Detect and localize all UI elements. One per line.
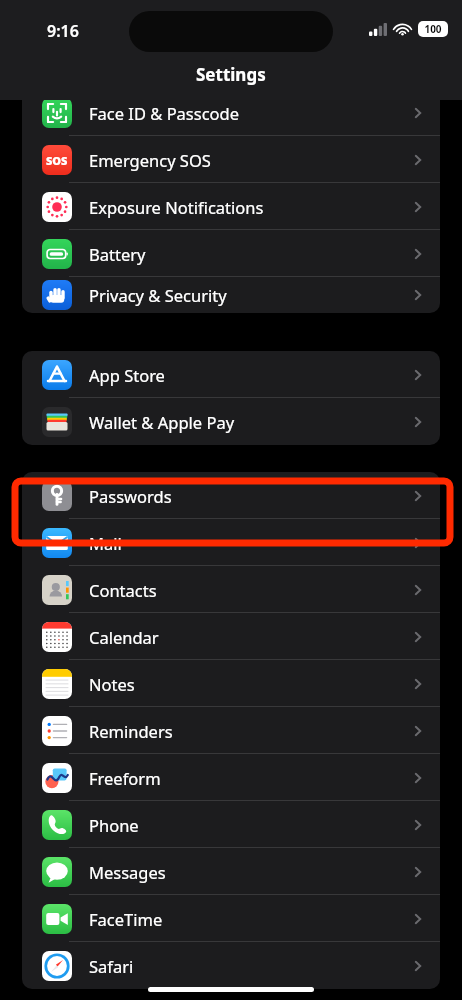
staticText: Emergency SOS (89, 149, 211, 171)
button[interactable]: Privacy & Security (22, 277, 440, 313)
staticText: App Store (89, 364, 165, 386)
button[interactable]: Mail (22, 519, 440, 566)
button[interactable]: Messages (22, 848, 440, 895)
button[interactable]: Passwords (22, 472, 440, 519)
staticText: Freeform (89, 767, 161, 789)
button[interactable]: Phone (22, 801, 440, 848)
button[interactable]: App Store (22, 351, 440, 398)
staticText: Face ID & Passcode (89, 102, 240, 124)
staticText: Reminders (89, 720, 173, 742)
button[interactable]: Battery (22, 230, 440, 277)
staticText: Messages (89, 861, 166, 883)
staticText: FaceTime (89, 908, 163, 930)
staticText: Privacy & Security (89, 284, 227, 306)
staticText: Passwords (89, 485, 172, 507)
staticText: Mail (89, 532, 122, 554)
button[interactable]: Calendar (22, 613, 440, 660)
button[interactable]: Contacts (22, 566, 440, 613)
button[interactable]: Wallet & Apple Pay (22, 398, 440, 445)
staticText: Exposure Notifications (89, 196, 264, 218)
staticText: SOS (46, 153, 68, 168)
button[interactable]: Reminders (22, 707, 440, 754)
staticText: Battery (89, 243, 146, 265)
button[interactable]: Face ID & Passcode (22, 100, 440, 136)
staticText: 9:16 (47, 20, 79, 42)
button[interactable]: Safari (22, 942, 440, 989)
button[interactable]: SOS (22, 136, 440, 183)
staticText: 100 (424, 22, 442, 36)
staticText: Calendar (89, 626, 159, 648)
staticText: Contacts (89, 579, 157, 601)
staticText: Settings (196, 63, 266, 86)
staticText: Wallet & Apple Pay (89, 411, 235, 433)
staticText: Phone (89, 814, 139, 836)
button[interactable]: Freeform (22, 754, 440, 801)
button[interactable]: Exposure Notifications (22, 183, 440, 230)
staticText: Notes (89, 673, 135, 695)
button[interactable]: Notes (22, 660, 440, 707)
staticText: Safari (89, 955, 134, 977)
button[interactable]: FaceTime (22, 895, 440, 942)
